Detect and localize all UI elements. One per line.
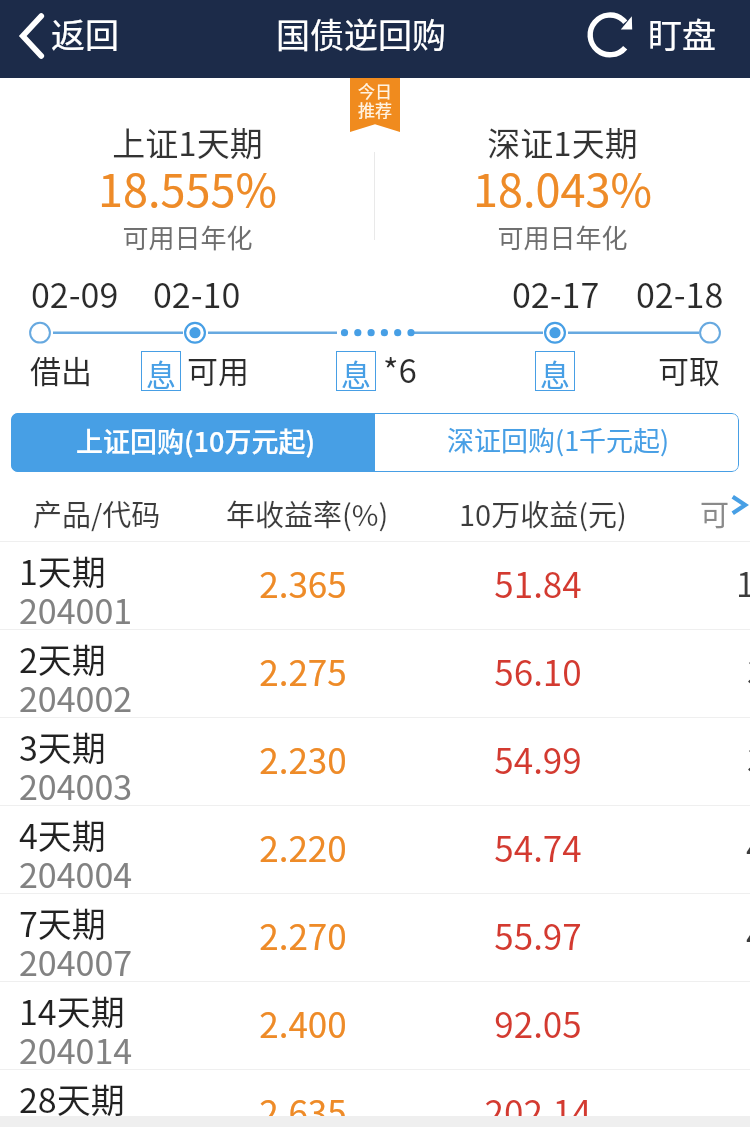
staticText: 3 [747,646,750,695]
staticText: 18.555% [0,155,375,220]
staticText: 28天期 [19,1074,125,1123]
button[interactable]: 今日 [350,78,400,132]
staticText: 可取 [658,347,720,392]
staticText: 息 [341,351,371,391]
button[interactable]: 更多列 [727,492,750,518]
staticText: 92.05 [478,997,598,1048]
staticText: 年收益率(%) [226,492,389,534]
staticText: 可 [700,492,730,534]
button[interactable]: 3天期 [0,718,750,806]
staticText: *6 [383,345,417,393]
staticText: 02-10 [153,269,241,318]
staticText: 2.230 [243,733,363,784]
staticText: 2.270 [243,909,363,960]
staticText: 3天期 [19,722,106,771]
staticText: 可用 [187,347,249,392]
staticText: 今日 [350,78,400,103]
button[interactable]: 4天期 [0,806,750,894]
staticText: 51.84 [478,557,598,608]
staticText: 204007 [19,937,133,986]
button[interactable]: 上证1天期 [0,78,375,265]
staticText: 56.10 [478,645,598,696]
button[interactable]: 2天期 [0,630,750,718]
button[interactable]: 14天期 [0,982,750,1070]
staticText: 2.275 [243,645,363,696]
staticText: 深证1天期 [375,118,750,166]
staticText: 202.14 [478,1085,598,1127]
button[interactable]: 上证回购(10万元起) [11,413,375,472]
staticText: 1天期 [19,546,106,595]
staticText: 4 [746,822,750,871]
staticText: 产品/代码 [33,492,161,534]
staticText: 204001 [19,585,133,634]
staticText: 2天期 [19,634,106,683]
staticText: 10万收益(元) [459,492,627,534]
button[interactable]: 刷新盯盘 [580,0,750,78]
staticText: 借出 [30,347,92,392]
staticText: 204014 [19,1025,133,1074]
staticText: 2.400 [243,997,363,1048]
staticText: 可用日年化 [0,218,375,256]
staticText: 54.74 [478,821,598,872]
button[interactable]: 28天期 [0,1070,750,1127]
button[interactable]: 深证1天期 [375,78,750,265]
staticText: 204028 [19,1113,133,1127]
staticText: 02-09 [31,269,119,318]
staticText: 盯盘 [648,9,716,58]
staticText: 1 [736,558,750,607]
staticText: 可用日年化 [375,218,750,256]
staticText: 国债逆回购 [276,9,446,58]
button[interactable]: 深证回购(1千元起) [375,413,739,472]
staticText: 02-17 [512,269,600,318]
staticText: 55.97 [478,909,598,960]
staticText: 18.043% [375,155,750,220]
staticText: 7天期 [19,898,106,947]
staticText: 54.99 [478,733,598,784]
staticText: 14天期 [19,986,125,1035]
staticText: 上证1天期 [0,118,375,166]
staticText: 02-18 [636,269,724,318]
staticText: 204002 [19,673,133,722]
staticText: 4天期 [19,810,106,859]
button[interactable]: 1天期 [0,542,750,630]
staticText: 2.220 [243,821,363,872]
staticText: 204003 [19,761,133,810]
staticText: 3 [747,734,750,783]
staticText: 深证回购(1千元起) [447,420,670,459]
staticText: 息 [146,351,176,391]
staticText: 2.365 [243,557,363,608]
staticText: 返回 [51,9,119,58]
staticText: 上证回购(10万元起) [76,421,316,460]
button[interactable]: 7天期 [0,894,750,982]
staticText: 4 [746,910,750,959]
staticText: 204004 [19,849,133,898]
staticText: 2.635 [243,1085,363,1127]
staticText: 推荐 [350,97,400,122]
staticText: 息 [540,351,570,391]
button[interactable]: 返回 [4,0,132,78]
